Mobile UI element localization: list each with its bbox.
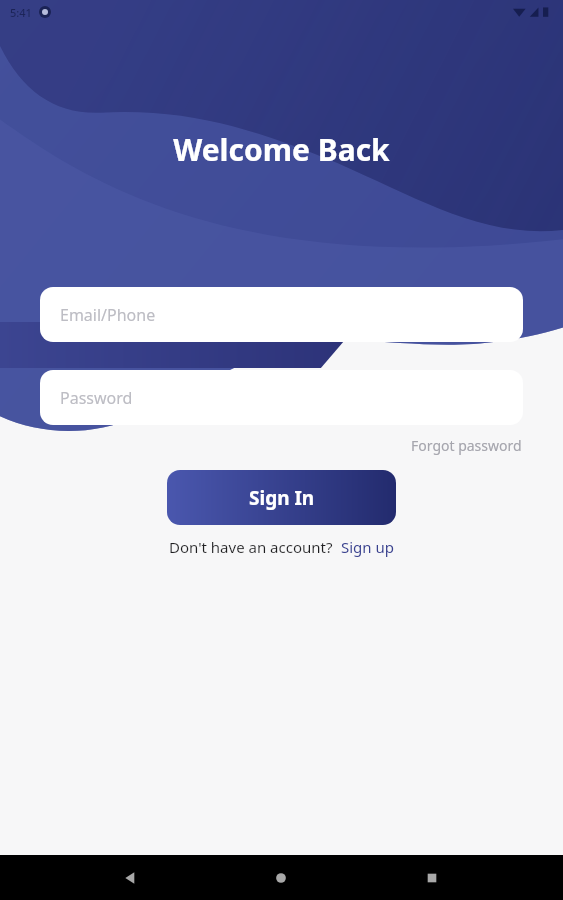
staticText: Email/Phone	[60, 304, 156, 326]
button[interactable]: Sign In	[167, 470, 396, 525]
staticText: Sign In	[249, 485, 315, 511]
button[interactable]: Sign up	[340, 537, 395, 557]
staticText: Don't have an account?	[169, 537, 333, 557]
button[interactable]: Forgot password	[409, 434, 524, 457]
staticText: Forgot password	[411, 436, 522, 455]
button[interactable]: Back	[110, 858, 150, 898]
staticText: 5:41	[10, 5, 32, 20]
staticText: Password	[60, 387, 133, 409]
staticText: Welcome Back	[173, 129, 390, 170]
button[interactable]: Home	[261, 858, 301, 898]
staticText: Sign up	[341, 537, 394, 557]
button[interactable]: Recent apps	[412, 858, 452, 898]
button[interactable]: Password	[40, 370, 523, 425]
button[interactable]: Email/Phone	[40, 287, 523, 342]
